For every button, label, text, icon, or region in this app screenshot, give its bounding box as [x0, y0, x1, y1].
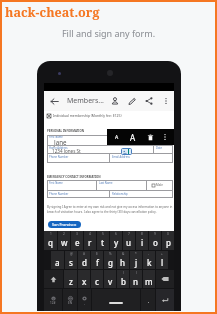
button[interactable]: * — [130, 251, 142, 269]
staticText: @ — [70, 252, 73, 256]
button[interactable]: 2 — [58, 231, 70, 250]
button[interactable]: 12# — [44, 289, 62, 311]
button[interactable]: 0 — [162, 231, 174, 250]
staticText: c — [95, 276, 99, 287]
staticText: s — [69, 257, 73, 268]
staticText: * — [135, 252, 137, 256]
staticText: 0 — [167, 232, 169, 236]
staticText: 4 — [89, 232, 91, 236]
button[interactable]: Increase text size — [126, 130, 140, 144]
staticText: 5 — [102, 232, 104, 236]
staticText: Jane — [54, 138, 67, 146]
staticText: p — [166, 237, 171, 248]
button[interactable]: San Francisco — [48, 221, 81, 228]
staticText: j — [135, 257, 138, 268]
staticText: Date — [156, 146, 162, 150]
staticText: u — [126, 237, 132, 248]
button[interactable]: a — [51, 251, 64, 269]
button[interactable] — [44, 270, 63, 288]
button[interactable]: 3 — [71, 231, 83, 250]
staticText: A — [115, 134, 119, 141]
button[interactable]: + — [156, 251, 168, 269]
staticText: 9 — [154, 232, 156, 236]
staticText: Individual membership (Monthly fee: $125… — [53, 113, 122, 118]
button[interactable]: Signature — [106, 91, 123, 111]
button[interactable]: Back — [44, 91, 64, 111]
staticText: q — [48, 237, 53, 248]
staticText: Email Address — [112, 155, 130, 159]
button[interactable] — [156, 270, 174, 288]
staticText: g — [108, 257, 113, 268]
staticText: w — [61, 237, 68, 248]
staticText: i — [141, 237, 144, 248]
staticText: Home Address — [49, 146, 68, 150]
staticText: A — [130, 132, 136, 143]
staticText: h — [120, 257, 126, 268]
staticText: , — [84, 301, 85, 305]
button[interactable]: $ — [91, 251, 103, 269]
staticText: 6 — [115, 232, 117, 236]
button[interactable]: c — [91, 270, 103, 288]
button[interactable]: ) — [130, 270, 142, 288]
button[interactable]: 8 — [136, 231, 148, 250]
staticText: o — [153, 237, 158, 248]
button[interactable]: & — [117, 251, 129, 269]
button[interactable]: z — [64, 270, 77, 288]
staticText: 1234 Jones St — [52, 148, 81, 154]
staticText: 2 — [63, 232, 65, 236]
button[interactable]: 7 — [123, 231, 135, 250]
staticText: + — [161, 252, 163, 256]
button[interactable]: Delete — [143, 130, 157, 144]
staticText: Phone Number — [49, 155, 69, 159]
staticText: k — [147, 257, 152, 268]
staticText: Last Name — [99, 181, 113, 185]
button[interactable]: # — [78, 251, 90, 269]
button[interactable]: Share — [140, 91, 157, 111]
button[interactable]: ( — [117, 270, 129, 288]
staticText: First Name — [49, 181, 63, 185]
staticText: m — [145, 276, 153, 287]
staticText: - — [148, 252, 150, 256]
staticText: 1 — [50, 232, 52, 236]
button[interactable]: 9 — [149, 231, 161, 250]
button[interactable]: m — [143, 270, 155, 288]
button[interactable] — [92, 289, 140, 311]
button[interactable]: Decrease text size — [110, 130, 124, 144]
button[interactable]: 5 — [97, 231, 109, 250]
button[interactable]: EN — [63, 289, 77, 311]
staticText: % — [109, 252, 112, 256]
staticText: 3 — [76, 232, 78, 236]
staticText: a — [55, 257, 60, 268]
button[interactable]: % — [104, 251, 116, 269]
staticText: t — [101, 237, 105, 248]
staticText: hack-cheat.org — [5, 4, 100, 21]
button[interactable]: - — [143, 251, 155, 269]
staticText: By signing I Agree to enter at my own ri… — [47, 205, 175, 214]
button[interactable]: 4 — [84, 231, 96, 250]
button[interactable] — [141, 289, 155, 311]
staticText: e — [75, 237, 80, 248]
button[interactable]: More options — [157, 91, 174, 111]
staticText: First Name — [49, 135, 63, 139]
staticText: # — [83, 252, 86, 256]
staticText: d — [82, 257, 87, 268]
staticText: l — [161, 257, 164, 268]
button[interactable]: , — [78, 289, 91, 311]
staticText: y — [114, 237, 119, 248]
staticText: z — [69, 276, 73, 287]
button[interactable]: Draw — [123, 91, 140, 111]
staticText: EMERGENCY CONTACT INFORMATION — [47, 175, 101, 179]
button[interactable]: @ — [65, 251, 77, 269]
button[interactable]: 1 — [44, 231, 57, 250]
button[interactable]: x — [78, 270, 90, 288]
staticText: Fill and sign any form. — [0, 27, 217, 39]
staticText: Male — [156, 183, 163, 187]
button[interactable]: 6 — [110, 231, 122, 250]
staticText: b — [121, 276, 126, 287]
button[interactable]: More options — [159, 131, 171, 143]
button[interactable]: Enter — [156, 289, 174, 311]
staticText: PERSONAL INFORMATION — [47, 129, 85, 133]
button[interactable]: v — [104, 270, 116, 288]
staticText: $ — [96, 252, 98, 256]
staticText: EN — [68, 301, 73, 305]
